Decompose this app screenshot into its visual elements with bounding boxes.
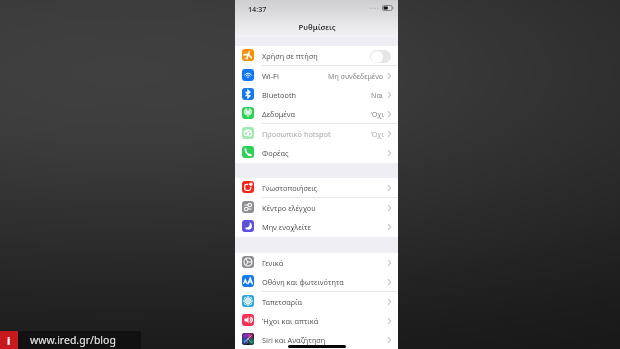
staticText: Οθόνη και φωτεινότητα (262, 277, 344, 287)
button[interactable]: Φορέας (235, 143, 398, 163)
staticText: Ήχοι και απτικά (262, 316, 319, 326)
staticText: Προσωπικό hotspot (262, 129, 331, 139)
button[interactable]: Δεδομένα (235, 104, 398, 124)
button[interactable]: Ήχοι και απτικά (235, 311, 398, 331)
staticText: Κέντρο ελέγχου (262, 203, 316, 213)
staticText: Φορέας (262, 148, 289, 158)
staticText: Ναι (371, 90, 384, 100)
staticText: Siri και Αναζήτηση (262, 335, 326, 345)
button[interactable]: Wi-Fi (235, 66, 398, 86)
staticText: Μην ενοχλείτε (262, 222, 311, 232)
staticText: Γενικά (262, 258, 284, 268)
staticText: Wi-Fi (262, 71, 279, 81)
button[interactable]: Χρήση σε πτήση (235, 46, 398, 66)
button[interactable]: Airplane mode toggle (370, 50, 391, 63)
staticText: Ταπετσαρία (262, 297, 302, 307)
button[interactable]: Προσωπικό hotspot (235, 124, 398, 144)
button[interactable]: Γνωστοποιήσεις (235, 178, 398, 198)
staticText: www.ired.gr/blog (30, 333, 116, 347)
button[interactable]: Bluetooth (235, 85, 398, 105)
staticText: Χρήση σε πτήση (262, 51, 318, 61)
button[interactable]: Siri και Αναζήτηση (235, 330, 398, 349)
button[interactable]: Γενικά (235, 253, 398, 273)
staticText: i (7, 333, 11, 348)
button[interactable]: Μην ενοχλείτε (235, 217, 398, 237)
staticText: 14:37 (248, 4, 267, 14)
staticText: Όχι (371, 109, 384, 119)
staticText: Όχι (371, 129, 384, 139)
button[interactable]: Info (0, 331, 18, 349)
staticText: Bluetooth (262, 90, 297, 100)
staticText: Μη συνδεδεμένο (328, 71, 384, 81)
staticText: Ρυθμίσεις (298, 22, 336, 32)
button[interactable]: Κέντρο ελέγχου (235, 198, 398, 218)
button[interactable]: Ταπετσαρία (235, 292, 398, 312)
staticText: Γνωστοποιήσεις (262, 183, 318, 193)
button[interactable]: www.ired.gr/blog (18, 331, 141, 349)
button[interactable]: Οθόνη και φωτεινότητα (235, 272, 398, 292)
staticText: Δεδομένα (262, 109, 296, 119)
